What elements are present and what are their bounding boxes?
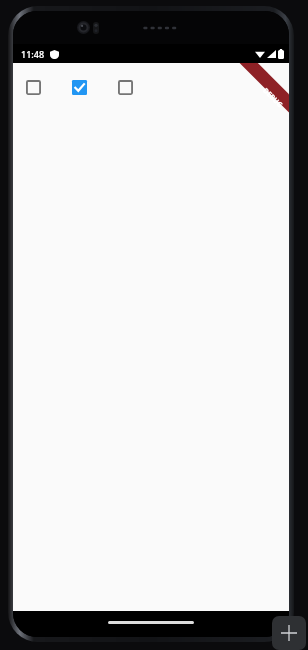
button[interactable]: Unchecked <box>111 73 139 101</box>
staticText: 11:48 <box>21 48 45 60</box>
button[interactable]: Checked <box>65 73 93 101</box>
button[interactable]: Unchecked <box>19 73 47 101</box>
staticText: DEBUG <box>260 86 285 110</box>
button[interactable]: Home gesture bar <box>108 621 194 624</box>
button[interactable]: Add device <box>272 616 306 650</box>
